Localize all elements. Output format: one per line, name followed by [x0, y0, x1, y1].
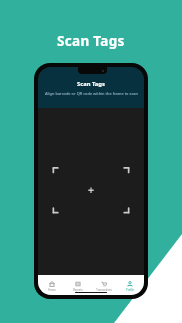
- staticText: Scan Tags: [77, 80, 105, 88]
- staticText: Scan Tags: [57, 32, 125, 50]
- button[interactable]: Profile: [118, 281, 142, 292]
- button[interactable]: Reports: [66, 281, 90, 292]
- staticText: Reports: [73, 288, 83, 292]
- staticText: Align barcode or QR code within the fram…: [45, 91, 138, 96]
- button[interactable]: Transactions: [92, 281, 116, 292]
- staticText: Home: [48, 288, 56, 292]
- button[interactable]: Home: [40, 281, 64, 292]
- staticText: Transactions: [96, 288, 112, 292]
- button[interactable]: Scan viewfinder, tap to focus: [38, 108, 144, 275]
- staticText: Profile: [126, 288, 134, 292]
